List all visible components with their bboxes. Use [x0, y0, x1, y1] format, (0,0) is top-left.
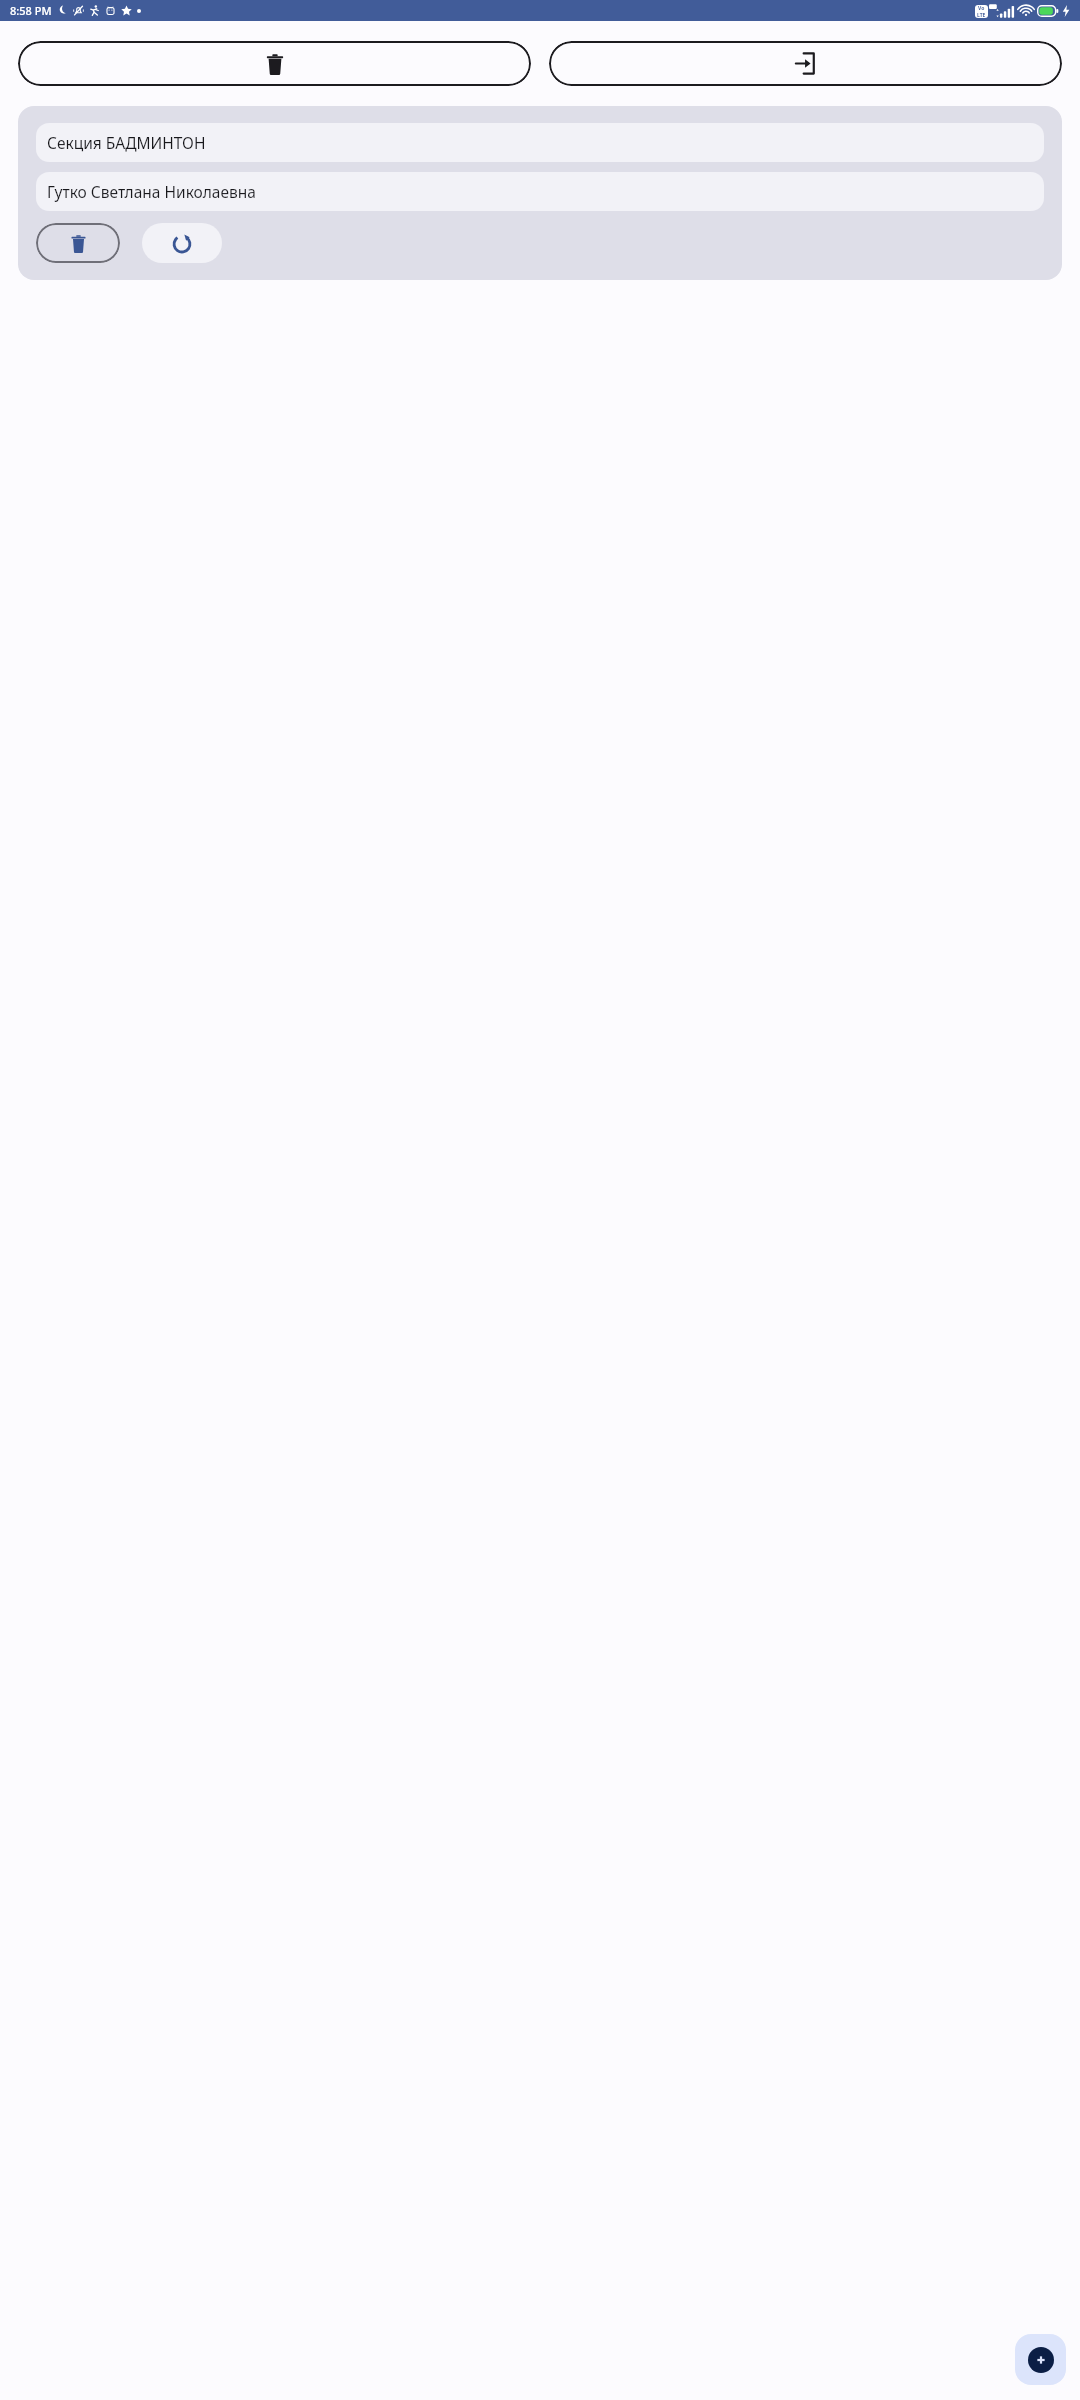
button[interactable]: Exit — [549, 41, 1062, 86]
button[interactable]: Add — [1015, 2334, 1066, 2385]
button[interactable]: Delete all — [18, 41, 531, 86]
staticText: Гутко Светлана Николаевна — [47, 181, 256, 202]
staticText: LTE — [977, 12, 986, 18]
button[interactable]: Refresh — [142, 223, 222, 263]
staticText: Секция БАДМИНТОН — [47, 132, 206, 153]
button[interactable]: Секция БАДМИНТОН — [36, 123, 1044, 162]
button[interactable]: Delete item — [36, 223, 120, 263]
button[interactable]: Гутко Светлана Николаевна — [36, 172, 1044, 211]
staticText: Vo — [978, 5, 985, 12]
staticText: 8:58 PM — [10, 3, 52, 18]
